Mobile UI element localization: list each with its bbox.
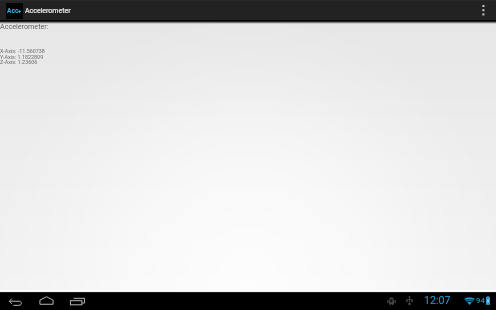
staticText: 12:07 — [424, 294, 451, 306]
staticText: Accelerometer — [25, 7, 71, 15]
button[interactable]: Recent apps — [70, 296, 85, 305]
staticText: Accelerometer: — [0, 22, 49, 30]
staticText: Z-Axis: 1.23606 — [0, 59, 38, 65]
staticText: Acc — [7, 7, 19, 15]
staticText: Y-Axis: 1.1822809 — [0, 54, 44, 60]
staticText: X-Axis: -11.560738 — [0, 48, 45, 54]
button[interactable]: More options — [472, 0, 496, 20]
staticText: 94 — [476, 296, 485, 305]
button[interactable]: Home — [39, 296, 54, 305]
button[interactable]: Back — [9, 297, 22, 306]
